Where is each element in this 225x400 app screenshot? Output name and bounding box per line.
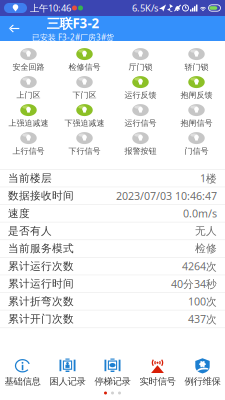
staticText: 困人记录 <box>49 376 85 387</box>
button[interactable]: 报警按钮 <box>112 130 168 158</box>
staticText <box>158 5 159 11</box>
button[interactable]: 检修信号 <box>56 46 112 74</box>
staticText: 运行反馈 <box>124 90 156 100</box>
button[interactable]: 上行信号 <box>0 130 56 158</box>
staticText: 上强迫减速 <box>8 118 48 128</box>
button[interactable]: Back <box>0 16 32 41</box>
button[interactable]: 下门区 <box>56 74 112 102</box>
staticText: 安全回路 <box>12 62 44 72</box>
staticText: 已安装 F3-2#厂房3#货 <box>32 32 114 43</box>
staticText: 100次 <box>188 294 217 308</box>
staticText: 累计折弯次数 <box>8 295 74 308</box>
staticText: 上门区 <box>16 90 40 100</box>
staticText: 基础信息 <box>4 376 40 387</box>
staticText: 下行信号 <box>68 146 100 156</box>
button[interactable]: 上门区 <box>0 74 56 102</box>
button[interactable]: 上强迫减速 <box>0 102 56 130</box>
button[interactable]: 厅门锁 <box>112 46 168 74</box>
staticText: 累计运行次数 <box>8 260 74 273</box>
staticText: 检修 <box>195 242 217 255</box>
staticText: 三联F3-2 <box>46 14 99 32</box>
staticText: 上午10:46 <box>27 2 71 14</box>
staticText: 轿门锁 <box>184 62 208 72</box>
staticText: 0.0m/s <box>183 206 217 220</box>
staticText: 2023/07/03 10:46:47 <box>116 189 217 203</box>
staticText: 检修信号 <box>68 62 100 72</box>
staticText: 速度 <box>8 207 30 220</box>
staticText: 抱闸信号 <box>180 118 212 128</box>
staticText: 厅门锁 <box>128 62 152 72</box>
staticText: 门信号 <box>184 146 208 156</box>
button[interactable]: 抱闸信号 <box>168 102 224 130</box>
staticText: 上行信号 <box>12 146 44 156</box>
staticText: 是否有人 <box>8 224 52 237</box>
button[interactable]: 抱闸反馈 <box>168 74 224 102</box>
staticText <box>71 4 72 12</box>
staticText: 数据接收时间 <box>8 189 74 202</box>
button[interactable]: 运行信号 <box>112 102 168 130</box>
button[interactable]: 下行信号 <box>56 130 112 158</box>
button[interactable]: 基础信息 <box>0 357 45 388</box>
staticText: 当前服务模式 <box>8 242 74 255</box>
button[interactable]: 困人记录 <box>45 357 90 388</box>
button[interactable]: 例行维保 <box>180 357 225 388</box>
staticText: 累计运行时间 <box>8 277 74 290</box>
staticText: 实时信号 <box>139 376 175 387</box>
staticText: 4264次 <box>182 259 217 273</box>
staticText: 下门区 <box>72 90 96 100</box>
button[interactable]: 下强迫减速 <box>56 102 112 130</box>
staticText: 累计开门次数 <box>8 312 74 325</box>
staticText: 下强迫减速 <box>64 118 104 128</box>
staticText: 437次 <box>188 312 217 326</box>
staticText: 当前楼层 <box>8 172 52 185</box>
button[interactable]: 运行反馈 <box>112 74 168 102</box>
staticText: 停梯记录 <box>94 376 130 387</box>
button[interactable]: 门信号 <box>168 130 224 158</box>
staticText: 运行信号 <box>124 118 156 128</box>
button[interactable]: 实时信号 <box>135 357 180 388</box>
button[interactable]: 停梯记录 <box>90 357 135 388</box>
button[interactable]: 安全回路 <box>0 46 56 74</box>
staticText: 40分34秒 <box>171 277 217 291</box>
staticText: 报警按钮 <box>124 146 156 156</box>
staticText: 无人 <box>195 224 217 237</box>
staticText: 抱闸反馈 <box>180 90 212 100</box>
staticText: 1楼 <box>200 171 217 185</box>
staticText: 例行维保 <box>184 376 220 387</box>
staticText: 6.5K/s <box>132 2 158 14</box>
button[interactable]: 轿门锁 <box>168 46 224 74</box>
